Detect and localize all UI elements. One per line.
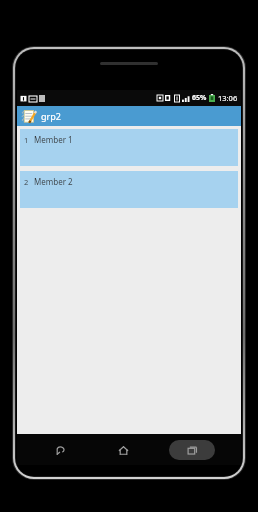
staticText: 13:06	[218, 93, 238, 103]
other: Group icon	[21, 108, 37, 124]
staticText: Member 1	[34, 134, 73, 145]
button[interactable]: Group icon	[17, 106, 241, 126]
staticText: 65%	[192, 93, 207, 103]
staticText: Member 2	[34, 176, 73, 187]
button[interactable]: Back	[43, 439, 77, 461]
button[interactable]: Home	[106, 439, 140, 461]
staticText: 2	[24, 177, 29, 187]
button[interactable]: Recent apps	[169, 440, 215, 460]
staticText: 1	[24, 135, 29, 145]
button[interactable]: 1	[20, 129, 238, 166]
staticText: grp2	[41, 110, 61, 122]
button[interactable]: 2	[20, 171, 238, 208]
